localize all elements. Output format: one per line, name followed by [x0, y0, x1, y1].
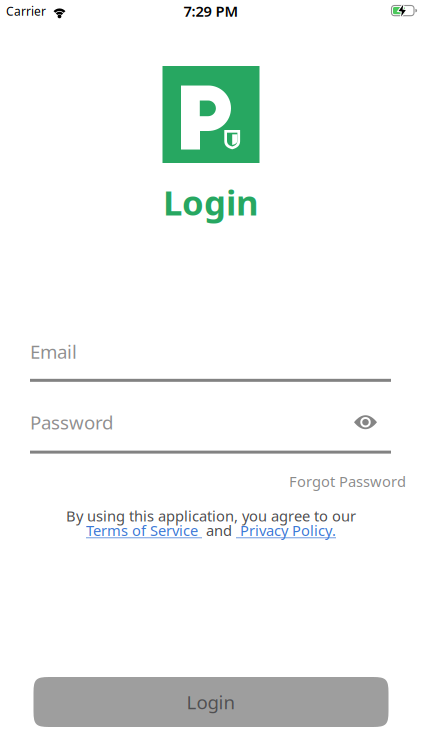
staticText: Email	[30, 339, 77, 364]
staticText: Carrier	[6, 3, 46, 19]
staticText: and	[202, 521, 236, 540]
button[interactable]: Password	[30, 410, 113, 435]
staticText: Login	[163, 179, 259, 225]
button[interactable]: Privacy Policy.	[236, 521, 336, 540]
staticText: Privacy Policy.	[236, 521, 336, 540]
button[interactable]: Email	[30, 339, 391, 382]
staticText: 7:29 PM	[183, 1, 238, 21]
staticText: Password	[30, 410, 113, 435]
staticText: Terms of Service	[86, 521, 202, 540]
button[interactable]: Forgot Password	[289, 472, 406, 491]
button[interactable]: Login	[33, 677, 388, 727]
button[interactable]: Show password	[354, 414, 377, 431]
button[interactable]: Terms of Service	[86, 521, 202, 540]
staticText: Login	[186, 690, 235, 714]
staticText: By using this application, you agree to …	[66, 506, 356, 526]
staticText: Forgot Password	[289, 472, 406, 491]
